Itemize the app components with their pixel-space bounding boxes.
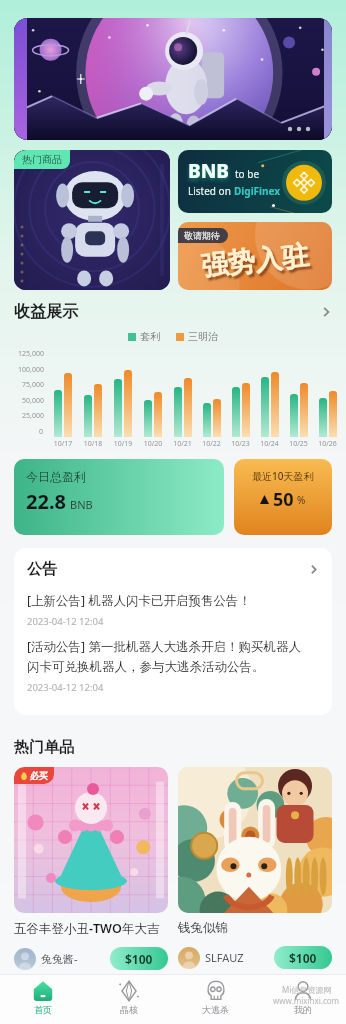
staticText: 10/21: [168, 439, 197, 449]
staticText: 22.8: [26, 488, 66, 515]
staticText: 10/23: [226, 439, 255, 449]
staticText: 晶核: [120, 1004, 138, 1015]
staticText: 0: [39, 427, 44, 437]
staticText: 强势入驻: [199, 238, 310, 283]
staticText: %: [297, 493, 306, 507]
staticText: BNB: [70, 497, 93, 512]
button[interactable]: $100: [274, 946, 332, 969]
button[interactable]: [14, 18, 332, 140]
staticText: 收益展示: [14, 302, 78, 322]
staticText: 敬请期待: [184, 230, 220, 241]
staticText: 10/17: [48, 439, 78, 449]
button[interactable]: 大逃杀: [172, 974, 259, 1024]
staticText: 10/24: [255, 439, 284, 449]
staticText: 10/20: [138, 439, 168, 449]
staticText: 三明治: [188, 330, 218, 343]
staticText: 今日总盈利: [26, 469, 86, 484]
staticText: 最近10天盈利: [252, 469, 314, 483]
button[interactable]: BNB: [178, 150, 332, 213]
button[interactable]: 敬请期待: [178, 222, 332, 290]
button[interactable]: 最近10天盈利: [234, 459, 332, 535]
staticText: BNB: [188, 158, 230, 184]
staticText: 必买: [30, 770, 48, 781]
staticText: DigiFinex: [234, 184, 281, 198]
staticText: Listed on: [188, 184, 234, 198]
button[interactable]: 首页: [0, 974, 86, 1024]
staticText: [活动公告] 第一批机器人大逃杀开启！购买机器人闪卡可兑换机器人，参与大逃杀活动…: [27, 638, 309, 675]
staticText: to be: [235, 167, 260, 181]
staticText: $100: [125, 951, 153, 967]
staticText: 10/22: [197, 439, 226, 449]
staticText: SLFAUZ: [205, 950, 274, 965]
staticText: 10/26: [313, 439, 342, 449]
staticText: 大逃杀: [202, 1004, 229, 1015]
staticText: 10/19: [108, 439, 138, 449]
staticText: 公告: [27, 560, 57, 579]
button[interactable]: 今日总盈利: [14, 459, 224, 535]
staticText: Mi信息资源网: [282, 984, 332, 995]
staticText: 钱兔似锦: [178, 920, 228, 936]
button[interactable]: 热门商品: [14, 150, 170, 290]
button[interactable]: 公告: [14, 548, 332, 715]
staticText: 75,000: [22, 380, 44, 390]
button[interactable]: $100: [110, 947, 168, 970]
button[interactable]: 必买: [14, 767, 168, 970]
button[interactable]: 晶核: [86, 974, 172, 1024]
staticText: 10/25: [284, 439, 313, 449]
staticText: 2023-04-12 12:04: [27, 615, 104, 628]
staticText: 100,000: [18, 365, 44, 375]
staticText: [上新公告] 机器人闪卡已开启预售公告！: [27, 592, 251, 609]
staticText: 热门单品: [14, 738, 74, 757]
staticText: 50,000: [22, 396, 44, 406]
staticText: 125,000: [18, 349, 44, 359]
staticText: 兔兔酱-: [41, 951, 110, 966]
staticText: 热门商品: [22, 153, 62, 166]
button[interactable]: 我的: [259, 974, 346, 1024]
staticText: 我的: [294, 1004, 312, 1015]
staticText: 10/18: [78, 439, 108, 449]
staticText: $100: [289, 950, 317, 966]
staticText: 2023-04-12 12:04: [27, 681, 104, 694]
staticText: 五谷丰登小丑-TWO年大吉: [14, 920, 160, 937]
staticText: www.mixinxi.com: [273, 995, 340, 1006]
staticText: 25,000: [22, 411, 44, 421]
button[interactable]: 收益展示: [14, 302, 332, 322]
staticText: 50: [273, 487, 294, 512]
staticText: 首页: [34, 1004, 52, 1015]
staticText: 套利: [140, 330, 160, 343]
button[interactable]: 钱兔似锦: [178, 767, 332, 969]
